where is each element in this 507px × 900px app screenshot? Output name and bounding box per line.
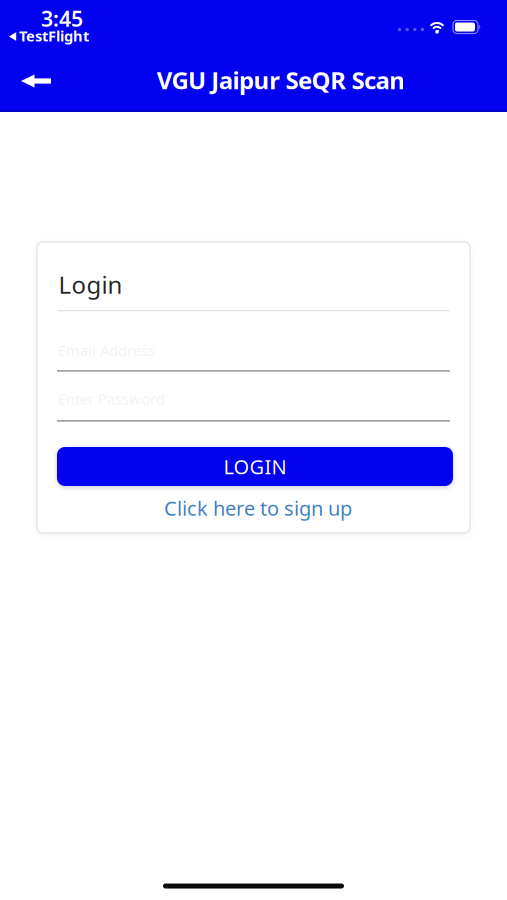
button[interactable]: Back [11,55,63,107]
staticText: VGU Jaipur SeQR Scan [157,64,405,96]
staticText: Enter Password [58,389,165,408]
button[interactable]: Click here to sign up [164,495,352,521]
button[interactable]: LOGIN [57,447,453,486]
staticText: LOGIN [223,453,286,480]
staticText: Email Address [58,340,155,360]
staticText: Click here to sign up [164,495,352,521]
staticText: TestFlight [19,26,89,45]
staticText: Login [58,268,122,300]
staticText: 3:45 [41,4,83,33]
